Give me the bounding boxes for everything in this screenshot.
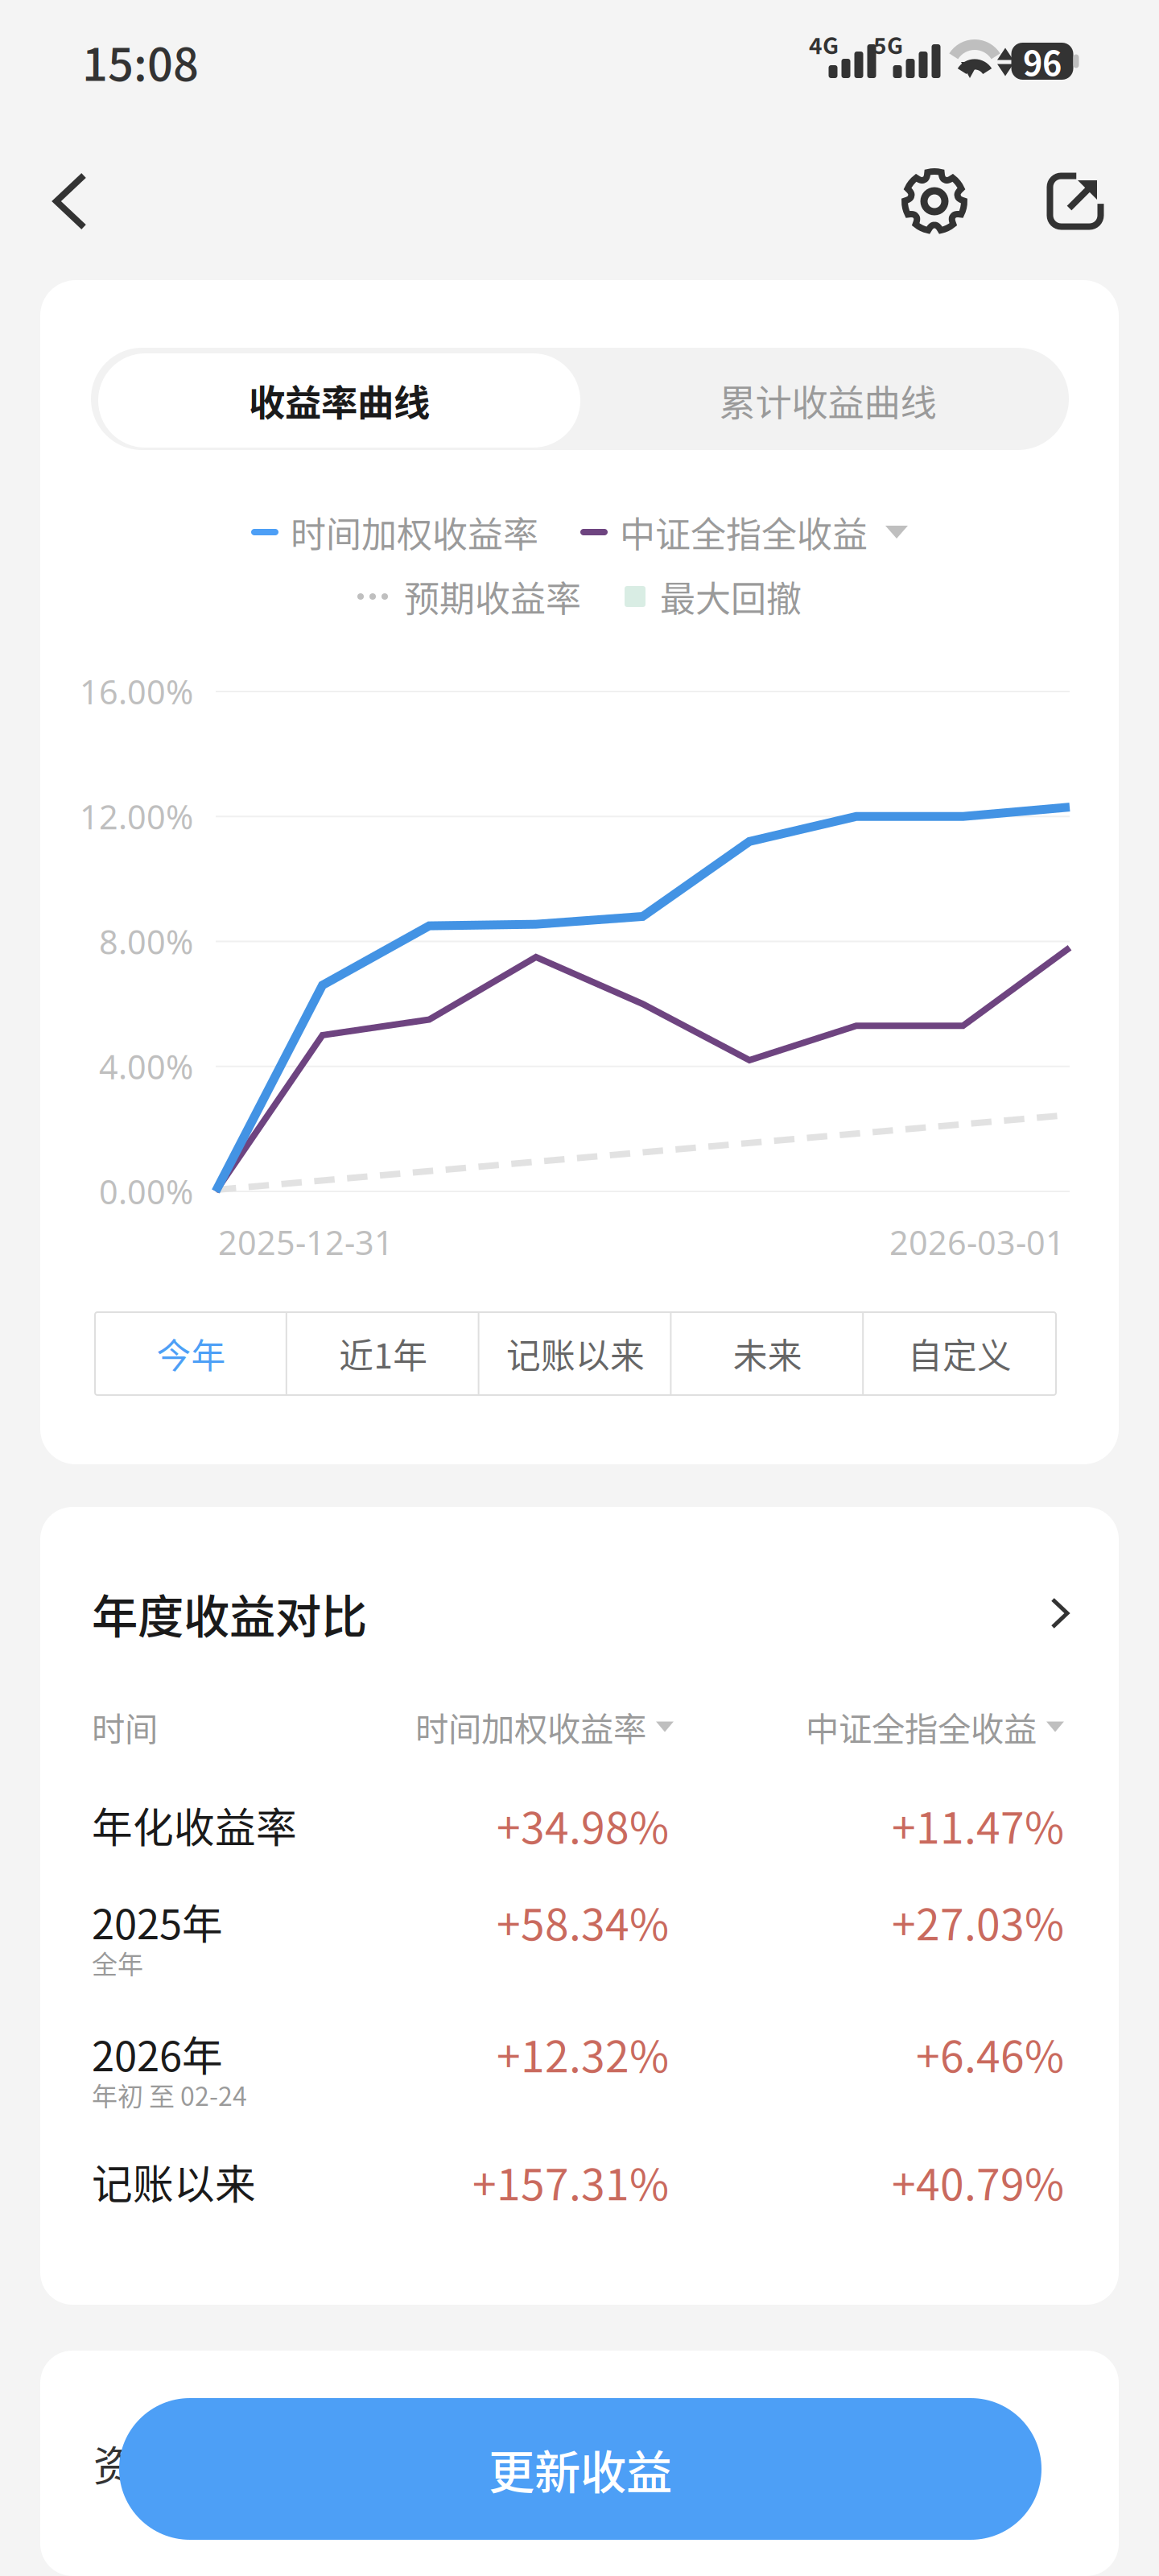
staticText: 更新收益 <box>489 2436 672 2502</box>
staticText: 累计收益曲线 <box>719 374 936 427</box>
staticText: 2025-12-31 <box>218 1220 394 1264</box>
staticText: 15:08 <box>82 29 199 94</box>
staticText: 年度收益对比 <box>92 1580 367 1647</box>
staticText: 未来 <box>733 1329 802 1378</box>
staticText: 近1年 <box>339 1329 428 1378</box>
staticText: 0.00% <box>99 1169 193 1214</box>
staticText: +58.34% <box>497 1890 669 1953</box>
staticText: +11.47% <box>892 1794 1064 1856</box>
staticText: 4G <box>809 28 839 61</box>
staticText: 记账以来 <box>92 2152 256 2211</box>
button[interactable]: 累计收益曲线 <box>587 353 1069 448</box>
staticText: +12.32% <box>497 2022 669 2085</box>
staticText: 资产 <box>93 2434 175 2493</box>
staticText: 5G <box>873 28 903 61</box>
staticText: 记账以来 <box>506 1329 645 1378</box>
staticText: +6.46% <box>916 2022 1064 2085</box>
staticText: 时间加权收益率 <box>415 1703 646 1751</box>
staticText: 16.00% <box>80 669 193 714</box>
staticText: 中证全指全收益 <box>620 506 868 558</box>
staticText: 4.00% <box>99 1044 193 1089</box>
staticText: 12.00% <box>80 794 193 839</box>
button[interactable]: Share <box>1031 157 1120 246</box>
staticText: 2026年 <box>92 2024 223 2083</box>
staticText: 今年 <box>156 1329 226 1378</box>
button[interactable]: 年度收益对比 <box>40 1557 1119 1670</box>
staticText: 中证全指全收益 <box>806 1703 1037 1751</box>
staticText: 自定义 <box>908 1329 1012 1378</box>
button[interactable]: 自定义 <box>864 1312 1056 1395</box>
staticText: 最大回撤 <box>660 571 802 622</box>
button[interactable]: Back <box>26 157 114 246</box>
button[interactable]: 更新收益 <box>119 2398 1041 2540</box>
staticText: 预期收益率 <box>404 571 581 622</box>
button[interactable]: 近1年 <box>287 1312 479 1395</box>
staticText: 2025年 <box>92 1892 223 1951</box>
button[interactable]: 未来 <box>672 1312 864 1395</box>
staticText: 96 <box>1023 37 1062 85</box>
staticText: +40.79% <box>892 2150 1064 2213</box>
staticText: 年化收益率 <box>92 1795 297 1854</box>
staticText: 时间 <box>92 1703 158 1751</box>
staticText: +157.31% <box>472 2150 669 2213</box>
button[interactable]: 收益率曲线 <box>98 353 580 448</box>
button[interactable]: Settings <box>890 157 979 246</box>
staticText: 全年 <box>92 1944 143 1981</box>
button[interactable]: 记账以来 <box>479 1312 672 1395</box>
staticText: +27.03% <box>892 1890 1064 1953</box>
staticText: 2026-03-01 <box>889 1220 1065 1264</box>
staticText: 年初 至 02-24 <box>92 2076 247 2113</box>
button[interactable]: 今年 <box>95 1312 287 1395</box>
staticText: +34.98% <box>497 1794 669 1856</box>
staticText: 8.00% <box>99 919 193 964</box>
staticText: 时间加权收益率 <box>291 506 538 558</box>
staticText: 收益率曲线 <box>249 374 430 427</box>
